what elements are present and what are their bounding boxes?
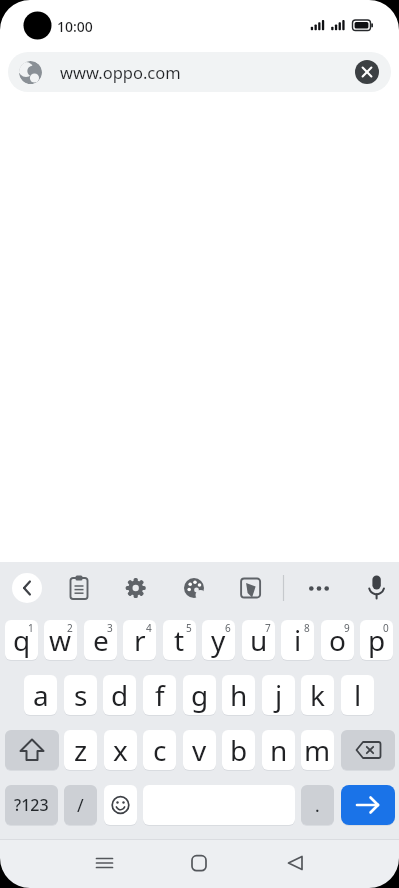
button[interactable]: m — [301, 730, 334, 770]
staticText: 10:00 — [57, 17, 93, 36]
button[interactable]: j — [262, 675, 295, 715]
button[interactable]: . — [301, 785, 334, 825]
staticText: t — [174, 621, 185, 659]
staticText: 0 — [383, 621, 389, 635]
staticText: e — [93, 621, 109, 659]
button[interactable]: l — [341, 675, 374, 715]
button[interactable]: o — [321, 620, 354, 660]
button[interactable]: a — [24, 675, 57, 715]
button[interactable] — [63, 572, 95, 604]
staticText: / — [77, 793, 84, 818]
button[interactable] — [361, 572, 393, 604]
button[interactable]: e — [84, 620, 117, 660]
button[interactable]: y — [202, 620, 235, 660]
button[interactable]: z — [64, 730, 97, 770]
staticText: m — [304, 731, 331, 769]
button[interactable]: u — [242, 620, 275, 660]
staticText: y — [211, 621, 226, 659]
staticText: u — [250, 621, 268, 659]
staticText: c — [153, 731, 167, 769]
button[interactable] — [86, 845, 124, 883]
button[interactable]: b — [222, 730, 255, 770]
staticText: p — [368, 621, 386, 659]
button[interactable]: / — [64, 785, 97, 825]
button[interactable]: d — [103, 675, 136, 715]
staticText: x — [113, 731, 128, 769]
button[interactable] — [341, 785, 395, 825]
staticText: . — [315, 794, 320, 817]
staticText: g — [191, 676, 209, 714]
staticText: r — [134, 621, 146, 659]
staticText: 4 — [146, 621, 152, 635]
button[interactable] — [276, 845, 314, 883]
button[interactable]: g — [183, 675, 216, 715]
button[interactable]: v — [183, 730, 216, 770]
button[interactable]: n — [262, 730, 295, 770]
button[interactable] — [303, 572, 335, 604]
staticText: v — [192, 731, 207, 769]
staticText: ?123 — [14, 794, 49, 816]
staticText: 8 — [304, 621, 310, 635]
button[interactable] — [120, 572, 152, 604]
staticText: 1 — [28, 621, 34, 635]
button[interactable]: k — [301, 675, 334, 715]
staticText: 7 — [265, 621, 271, 635]
staticText: 5 — [186, 621, 192, 635]
button[interactable] — [235, 572, 267, 604]
button[interactable] — [178, 572, 210, 604]
button[interactable]: f — [143, 675, 176, 715]
staticText: l — [354, 676, 362, 714]
staticText: h — [230, 676, 248, 714]
staticText: i — [294, 621, 302, 659]
button[interactable] — [355, 60, 379, 84]
staticText: 6 — [225, 621, 231, 635]
button[interactable]: ?123 — [5, 785, 58, 825]
staticText: 2 — [67, 621, 73, 635]
staticText: www.oppo.com — [60, 61, 181, 83]
staticText: b — [230, 731, 248, 769]
button[interactable]: s — [64, 675, 97, 715]
staticText: k — [310, 676, 325, 714]
staticText: 9 — [344, 621, 350, 635]
staticText: s — [74, 676, 88, 714]
staticText: f — [155, 676, 165, 714]
staticText: n — [270, 731, 288, 769]
staticText: o — [329, 621, 346, 659]
staticText: j — [275, 676, 283, 714]
staticText: q — [13, 621, 31, 659]
button[interactable]: w — [44, 620, 77, 660]
staticText: 3 — [107, 621, 113, 635]
button[interactable]: p — [360, 620, 393, 660]
button[interactable] — [12, 573, 42, 603]
button[interactable]: c — [143, 730, 176, 770]
button[interactable]: i — [281, 620, 314, 660]
button[interactable]: x — [104, 730, 137, 770]
button[interactable]: www.oppo.com — [8, 52, 391, 92]
staticText: d — [111, 676, 129, 714]
staticText: z — [74, 731, 88, 769]
button[interactable]: r — [123, 620, 156, 660]
button[interactable] — [341, 730, 395, 770]
button[interactable] — [180, 845, 218, 883]
staticText: a — [33, 676, 49, 714]
button[interactable] — [5, 730, 59, 770]
button[interactable]: h — [222, 675, 255, 715]
button[interactable]: t — [163, 620, 196, 660]
button[interactable] — [104, 785, 137, 825]
staticText: w — [49, 621, 72, 659]
button[interactable]: q — [5, 620, 38, 660]
